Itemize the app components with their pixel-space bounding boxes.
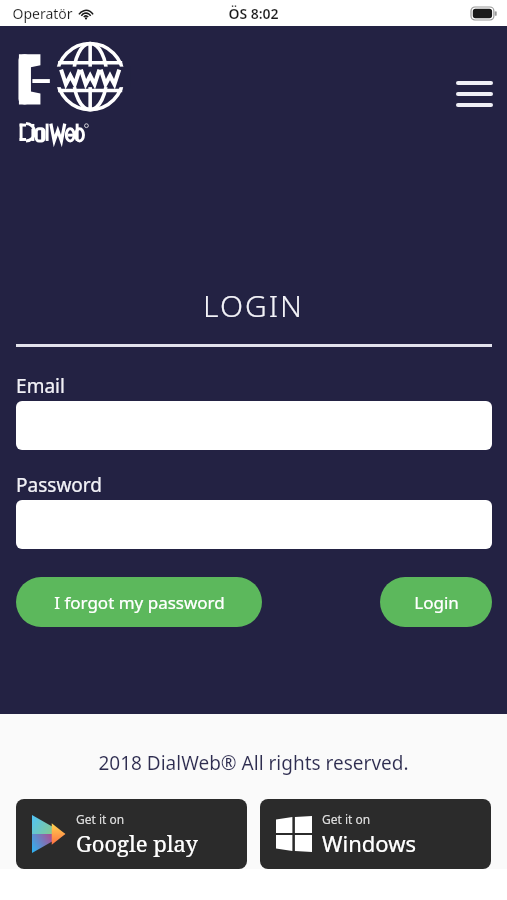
button[interactable]: Get it on Google Play: [16, 799, 247, 869]
staticText: Password: [16, 472, 102, 498]
staticText: Windows: [322, 828, 416, 858]
button[interactable]: Email input: [16, 401, 492, 450]
button[interactable]: Get it on Windows: [260, 799, 491, 869]
button[interactable]: DialWeb logo: [14, 34, 126, 146]
staticText: Operatör: [12, 4, 73, 23]
button[interactable]: I forgot my password: [16, 577, 262, 627]
staticText: 2018 DialWeb® All rights reserved.: [98, 750, 409, 776]
button[interactable]: Login: [380, 577, 492, 627]
staticText: Get it on: [322, 811, 371, 827]
staticText: ÖS 8:02: [228, 4, 279, 23]
staticText: Get it on: [76, 811, 125, 827]
staticText: LOGIN: [203, 285, 304, 326]
staticText: Login: [414, 591, 459, 614]
button[interactable]: Password input: [16, 500, 492, 549]
button[interactable]: Menu: [448, 68, 500, 120]
staticText: I forgot my password: [54, 591, 225, 614]
staticText: Google play: [76, 828, 198, 858]
staticText: Email: [16, 373, 65, 399]
